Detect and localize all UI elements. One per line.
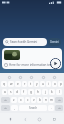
button[interactable]: y bbox=[34, 81, 39, 87]
button[interactable]: , bbox=[11, 105, 18, 111]
staticText: p bbox=[60, 82, 62, 86]
button[interactable]: j bbox=[42, 89, 48, 95]
staticText: n bbox=[45, 98, 47, 102]
button[interactable]: Microphone bbox=[6, 115, 14, 123]
staticText: Gemini bbox=[50, 40, 59, 44]
staticText: y bbox=[36, 82, 38, 86]
button[interactable]: o bbox=[52, 81, 57, 87]
button[interactable]: Search bbox=[19, 105, 47, 111]
button[interactable]: Enter bbox=[55, 105, 63, 111]
button[interactable]: e bbox=[15, 81, 21, 87]
button[interactable]: b bbox=[37, 97, 42, 103]
button[interactable]: n bbox=[43, 97, 48, 103]
button[interactable]: c bbox=[25, 97, 30, 103]
staticText: Here for more information text bbox=[9, 63, 60, 67]
staticText: , bbox=[14, 106, 15, 110]
staticText: t bbox=[30, 82, 32, 86]
button[interactable]: Search with Gemini searches bbox=[3, 38, 47, 46]
button[interactable]: Keyboard tool 5 bbox=[52, 75, 57, 80]
staticText: z bbox=[13, 98, 15, 102]
button[interactable]: h bbox=[35, 89, 41, 95]
button[interactable]: l bbox=[56, 89, 62, 95]
staticText: Search with Gemini searches bbox=[10, 40, 45, 44]
staticText: c bbox=[27, 98, 29, 102]
button[interactable]: f bbox=[21, 89, 27, 95]
staticText: l bbox=[59, 90, 60, 94]
button[interactable]: m bbox=[49, 97, 54, 103]
button[interactable]: r bbox=[22, 81, 27, 87]
staticText: s bbox=[10, 90, 12, 94]
button[interactable]: i bbox=[46, 81, 51, 87]
button[interactable]: Here for more information text bbox=[2, 48, 62, 69]
button[interactable]: Keyboard tool 4 bbox=[41, 75, 46, 80]
button[interactable]: . bbox=[48, 105, 54, 111]
staticText: g bbox=[30, 90, 32, 94]
staticText: k bbox=[51, 90, 53, 94]
button[interactable]: Symbols bbox=[1, 105, 10, 111]
button[interactable]: x bbox=[18, 97, 24, 103]
button[interactable]: d bbox=[14, 89, 20, 95]
staticText: e bbox=[17, 82, 19, 86]
staticText: x bbox=[20, 98, 22, 102]
staticText: w bbox=[10, 82, 13, 86]
button[interactable]: v bbox=[31, 97, 36, 103]
staticText: a bbox=[4, 90, 6, 94]
button[interactable]: Keyboard tool 3 bbox=[29, 75, 34, 80]
button[interactable]: a bbox=[2, 89, 7, 95]
button[interactable]: w bbox=[8, 81, 14, 87]
staticText: Search bbox=[29, 106, 38, 110]
button[interactable]: Keyboard tool 1 bbox=[7, 75, 12, 80]
button[interactable]: z bbox=[11, 97, 17, 103]
button[interactable]: s bbox=[8, 89, 13, 95]
staticText: d bbox=[16, 90, 18, 94]
staticText: v bbox=[33, 98, 35, 102]
button[interactable]: Home bbox=[35, 115, 43, 123]
button[interactable]: g bbox=[28, 89, 34, 95]
button[interactable]: Play bbox=[50, 58, 61, 69]
staticText: . bbox=[51, 106, 52, 110]
button[interactable]: q bbox=[1, 81, 7, 87]
staticText: q bbox=[3, 82, 5, 86]
staticText: b bbox=[39, 98, 41, 102]
button[interactable]: p bbox=[58, 81, 63, 87]
button[interactable]: u bbox=[40, 81, 45, 87]
button[interactable]: Back bbox=[21, 115, 29, 123]
staticText: j bbox=[45, 90, 46, 94]
staticText: i bbox=[48, 82, 49, 86]
staticText: h bbox=[37, 90, 39, 94]
button[interactable]: Recent apps bbox=[50, 115, 58, 123]
button[interactable]: Shift bbox=[1, 97, 10, 103]
button[interactable]: k bbox=[49, 89, 55, 95]
staticText: u bbox=[42, 82, 44, 86]
button[interactable]: t bbox=[28, 81, 33, 87]
button[interactable]: Gemini bbox=[48, 38, 61, 46]
staticText: f bbox=[23, 90, 25, 94]
staticText: o bbox=[54, 82, 56, 86]
button[interactable]: Keyboard tool 2 bbox=[18, 75, 23, 80]
staticText: r bbox=[24, 82, 26, 86]
button[interactable]: Backspace bbox=[55, 97, 63, 103]
staticText: m bbox=[50, 98, 53, 102]
